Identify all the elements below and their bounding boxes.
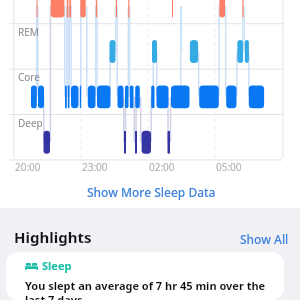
staticText: Show All (240, 231, 289, 247)
staticText: 02:00 (149, 160, 175, 174)
staticText: Core (18, 70, 40, 84)
staticText: 20:00 (15, 160, 41, 174)
button[interactable]: Show All (240, 231, 289, 247)
staticText: You slept an average of 7 hr 45 min over… (25, 278, 270, 300)
staticText: REM (18, 25, 39, 39)
button[interactable]: Sleep (6, 252, 284, 300)
staticText: Highlights (14, 227, 92, 247)
staticText: Deep (18, 116, 43, 130)
staticText: Sleep (42, 258, 72, 273)
button[interactable]: Show More Sleep Data (0, 178, 300, 208)
staticText: Show More Sleep Data (87, 184, 216, 200)
staticText: 05:00 (216, 160, 242, 174)
staticText: 23:00 (82, 160, 108, 174)
